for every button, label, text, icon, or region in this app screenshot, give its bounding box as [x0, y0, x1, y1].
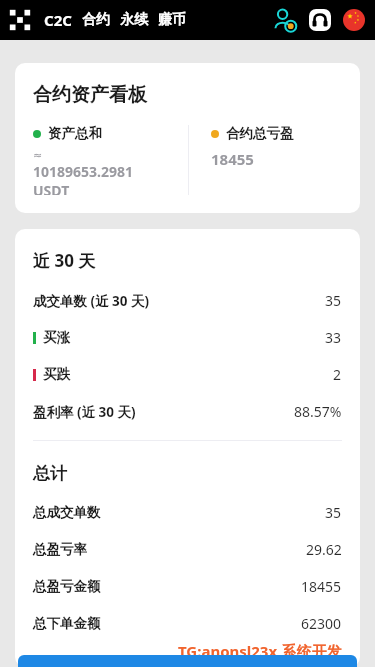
button[interactable]: 总成交单数	[33, 503, 342, 522]
button[interactable]: 买跌	[33, 365, 342, 384]
staticText: 18455	[211, 149, 254, 169]
staticText: 35	[325, 291, 342, 310]
staticText: 33	[325, 328, 342, 347]
button[interactable]: 赚币	[158, 11, 186, 29]
button[interactable]: 永续	[120, 11, 148, 29]
staticText: 62300	[301, 614, 342, 633]
staticText: ≈	[33, 149, 43, 162]
button[interactable]: 合约资产看板	[15, 63, 360, 213]
button[interactable]: Menu	[9, 9, 31, 31]
staticText: 盈利率 (近 30 天)	[33, 403, 136, 421]
button[interactable]: 盈利率 (近 30 天)	[33, 402, 342, 421]
staticText: 赚币	[158, 11, 186, 29]
staticText: 合约资产看板	[33, 83, 147, 107]
staticText: 35	[325, 503, 342, 522]
button[interactable]: Language	[343, 9, 365, 31]
staticText: USDT	[33, 181, 70, 195]
button[interactable]: 近 30 天	[15, 229, 360, 667]
staticText: 总计	[33, 463, 67, 484]
staticText: 29.62	[306, 540, 342, 559]
staticText: 合约	[82, 11, 110, 29]
button[interactable]: 总盈亏金额	[33, 577, 342, 596]
staticText: 成交单数 (近 30 天)	[33, 292, 150, 310]
staticText: TG:anonsl23x,系统开发	[178, 641, 342, 661]
staticText: 总盈亏金额	[33, 578, 101, 595]
button[interactable]: Support	[309, 9, 331, 31]
staticText: 10189653.2981	[33, 162, 134, 181]
button[interactable]: 合约	[82, 11, 110, 29]
button[interactable]: 总盈亏率	[33, 540, 342, 559]
staticText: 买涨	[43, 329, 70, 346]
staticText: 买跌	[43, 366, 70, 383]
staticText: 合约总亏盈	[226, 125, 294, 142]
staticText: 88.57%	[294, 402, 342, 421]
staticText: 总成交单数	[33, 504, 101, 521]
staticText: 近 30 天	[33, 249, 96, 272]
staticText: C2C	[44, 10, 72, 30]
staticText: 永续	[120, 11, 148, 29]
staticText: 18455	[301, 577, 342, 596]
button[interactable]: 买涨	[33, 328, 342, 347]
button[interactable]: 成交单数 (近 30 天)	[33, 291, 342, 310]
button[interactable]: C2C	[44, 10, 72, 30]
staticText: 总下单金额	[33, 615, 101, 632]
staticText: 2	[333, 365, 342, 384]
staticText: 资产总和	[48, 125, 102, 142]
button[interactable]: Account	[273, 8, 297, 32]
button[interactable]: 总下单金额	[33, 614, 342, 633]
staticText: 总盈亏率	[33, 541, 87, 558]
